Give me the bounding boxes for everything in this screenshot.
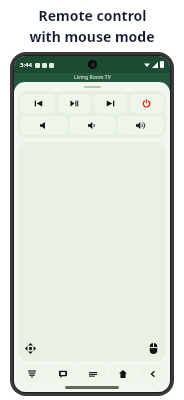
button[interactable]: Apps — [49, 365, 76, 382]
button[interactable]: Power — [130, 94, 163, 113]
button[interactable]: Volume down — [70, 116, 115, 135]
staticText: with mouse mode — [29, 27, 155, 46]
button[interactable]: Move — [25, 343, 36, 354]
staticText: 3:44 — [20, 61, 32, 69]
button[interactable]: Home — [109, 365, 136, 382]
button[interactable]: Trackpad — [18, 142, 166, 361]
button[interactable]: Mouse mode — [148, 343, 159, 354]
button[interactable]: Keyboard — [18, 365, 46, 382]
staticText: Remote control — [38, 6, 147, 25]
button[interactable]: Back — [139, 365, 166, 382]
button[interactable]: Mute — [21, 116, 67, 135]
button[interactable]: Volume up — [118, 116, 163, 135]
button[interactable]: Next — [94, 94, 127, 113]
button[interactable]: Play pause — [58, 94, 91, 113]
button[interactable]: Menu — [79, 365, 106, 382]
staticText: Living Room TV — [74, 74, 111, 81]
button[interactable]: Previous — [21, 94, 55, 113]
